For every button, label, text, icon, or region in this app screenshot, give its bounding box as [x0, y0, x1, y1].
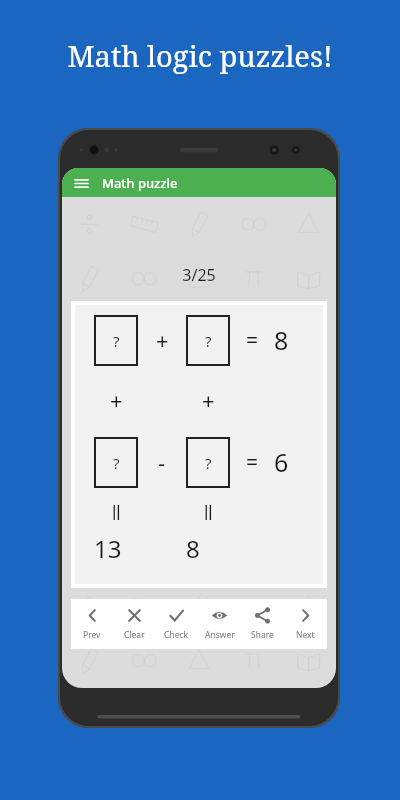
button[interactable]: Clear	[113, 599, 155, 649]
staticText: ?	[113, 453, 120, 473]
button[interactable]: ?	[186, 437, 230, 488]
button[interactable]: ?	[94, 315, 138, 366]
button[interactable]: Prev	[71, 599, 113, 649]
staticText: 3/25	[62, 264, 336, 286]
button[interactable]: ?	[94, 437, 138, 488]
staticText: Math puzzle	[102, 174, 178, 192]
staticText: +	[202, 385, 215, 415]
staticText: Prev	[83, 629, 101, 641]
staticText: +	[156, 325, 169, 355]
staticText: Answer	[205, 629, 235, 641]
staticText: +	[110, 385, 123, 415]
staticText: ǁ	[111, 500, 122, 526]
staticText: 13	[94, 532, 122, 565]
button[interactable]: ?	[186, 315, 230, 366]
button[interactable]: Open navigation menu	[71, 173, 91, 193]
staticText: ?	[205, 453, 212, 473]
button[interactable]: Answer	[198, 599, 241, 649]
staticText: ǁ	[203, 500, 214, 526]
staticText: 8	[186, 532, 200, 565]
staticText: Next	[296, 629, 315, 641]
button[interactable]: Next	[284, 599, 327, 649]
button[interactable]: Check	[155, 599, 198, 649]
staticText: 8	[274, 323, 289, 357]
staticText: -	[158, 447, 166, 477]
staticText: ?	[205, 331, 212, 351]
staticText: 6	[274, 445, 289, 479]
staticText: Clear	[124, 629, 145, 641]
staticText: =	[246, 448, 259, 477]
staticText: =	[246, 326, 259, 355]
staticText: Share	[251, 629, 274, 641]
staticText: Math logic puzzles!	[67, 36, 333, 75]
button[interactable]: Share	[241, 599, 284, 649]
staticText: Check	[164, 629, 189, 641]
staticText: ?	[113, 331, 120, 351]
